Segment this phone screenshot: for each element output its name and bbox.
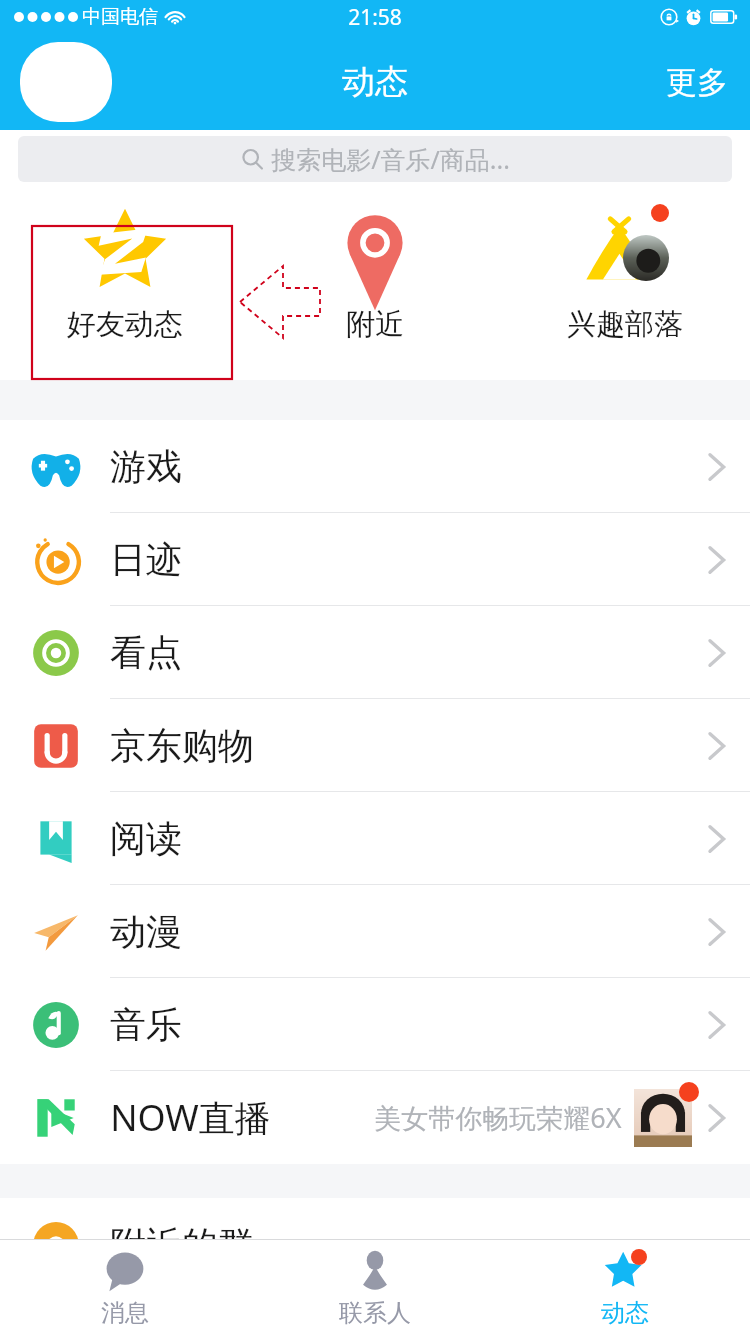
staticText: 附近 [346,306,404,343]
staticText: 阅读 [110,816,182,861]
button[interactable]: 联系人 [250,1240,500,1334]
button[interactable]: 动漫 [0,885,750,978]
staticText: 好友动态 [67,306,183,343]
other: Open [706,543,726,577]
button[interactable]: 附近 [250,188,500,380]
staticText: 音乐 [110,1002,182,1047]
other: Open [706,822,726,856]
other: Open [706,915,726,949]
button[interactable]: NOW直播 [0,1071,750,1164]
button[interactable]: 京东购物 [0,699,750,792]
staticText: 美女带你畅玩荣耀6X [374,1099,622,1136]
staticText: 联系人 [339,1298,411,1328]
button[interactable]: 音乐 [0,978,750,1071]
other: Open [706,636,726,670]
staticText: 搜索电影/音乐/商品... [271,142,510,176]
staticText: 动漫 [110,909,182,954]
other: Open [706,729,726,763]
button[interactable]: 游戏 [0,420,750,513]
staticText: 动态 [601,1298,649,1328]
button[interactable]: 更多 [644,51,750,114]
staticText: 日迹 [110,537,182,582]
button[interactable]: 搜索电影/音乐/商品... [18,136,732,182]
staticText: 兴趣部落 [567,306,683,343]
staticText: 更多 [666,63,728,102]
staticText: 京东购物 [110,723,254,768]
button[interactable]: 兴趣部落 [500,188,750,380]
staticText: NOW直播 [110,1093,271,1142]
staticText: 动态 [342,61,408,103]
button[interactable]: 日迹 [0,513,750,606]
button[interactable]: 看点 [0,606,750,699]
button[interactable]: 好友动态 [0,188,250,380]
staticText: 消息 [101,1298,149,1328]
staticText: 游戏 [110,444,182,489]
button[interactable]: 动态 [500,1240,750,1334]
other: Open [706,450,726,484]
button[interactable]: 消息 [0,1240,250,1334]
staticText: 中国电信 [82,5,158,29]
staticText: 附近的群 [110,1222,254,1267]
button[interactable]: 附近的群 [0,1198,750,1291]
staticText: 21:58 [348,3,402,32]
button[interactable]: 阅读 [0,792,750,885]
staticText: 看点 [110,630,182,675]
button[interactable]: Profile avatar [20,42,112,122]
other: Open [706,1008,726,1042]
other: Open [706,1101,726,1135]
